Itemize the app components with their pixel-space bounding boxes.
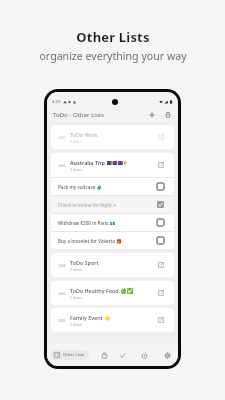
staticText: 3 items — [70, 139, 82, 144]
button[interactable]: Australia Trip — [51, 153, 174, 177]
staticText: Other Lists — [63, 352, 85, 358]
staticText: 4 items — [70, 167, 82, 172]
button[interactable]: Add list — [146, 109, 157, 120]
staticText: Other Lists — [76, 28, 150, 46]
staticText: Withdraw €300 in Paris 💶 — [58, 220, 116, 226]
button[interactable]: Notes — [162, 109, 173, 120]
button[interactable]: Unchecked — [157, 219, 164, 226]
staticText: ToDo Work — [70, 131, 98, 138]
staticText: ToDo Sport — [70, 259, 99, 266]
button[interactable]: ToDo Sport — [51, 253, 174, 277]
staticText: 3:29 — [52, 99, 61, 105]
staticText: Family Event 🌟 — [70, 314, 111, 321]
button[interactable]: Pack my suitcase 🧳 — [51, 178, 174, 195]
button[interactable]: Family Event 🌟 — [51, 308, 174, 332]
button[interactable]: Withdraw €300 in Paris 💶 — [51, 214, 174, 231]
staticText: 5 items — [70, 267, 82, 272]
button[interactable]: Buy a bracelet for Violetta 🎁 — [51, 232, 174, 249]
button[interactable]: Check in online for flight ✈ — [51, 196, 174, 213]
staticText: Pack my suitcase 🧳 — [58, 184, 103, 190]
button[interactable]: Edit list — [156, 315, 166, 325]
staticText: ToDo - Other Lists — [53, 110, 104, 118]
button[interactable]: ToDo Healthy Food 🍏✅ — [51, 281, 174, 305]
button[interactable]: Checked — [157, 201, 164, 208]
button[interactable]: Edit list — [156, 132, 166, 142]
button[interactable]: Other Lists — [50, 350, 89, 360]
button[interactable]: Edit list — [156, 288, 166, 298]
staticText: Australia Trip — [70, 159, 107, 166]
staticText: Check in online for flight ✈ — [58, 202, 117, 208]
button[interactable]: ToDo Work — [51, 125, 174, 149]
staticText: 2 items — [70, 322, 82, 327]
button[interactable]: Unchecked — [157, 237, 164, 244]
staticText: Buy a bracelet for Violetta 🎁 — [58, 238, 122, 244]
button[interactable]: Edit list — [156, 260, 166, 270]
staticText: ToDo Healthy Food 🍏✅ — [70, 287, 134, 294]
button[interactable]: Edit list — [156, 160, 166, 170]
button[interactable]: Settings — [160, 348, 174, 362]
button[interactable]: Unchecked — [157, 183, 164, 190]
button[interactable]: Shopping list — [97, 348, 111, 362]
button[interactable]: Timer — [137, 348, 151, 362]
button[interactable]: Completed — [115, 348, 129, 362]
staticText: organize everything your way — [39, 49, 187, 63]
staticText: 6 items — [70, 295, 82, 300]
